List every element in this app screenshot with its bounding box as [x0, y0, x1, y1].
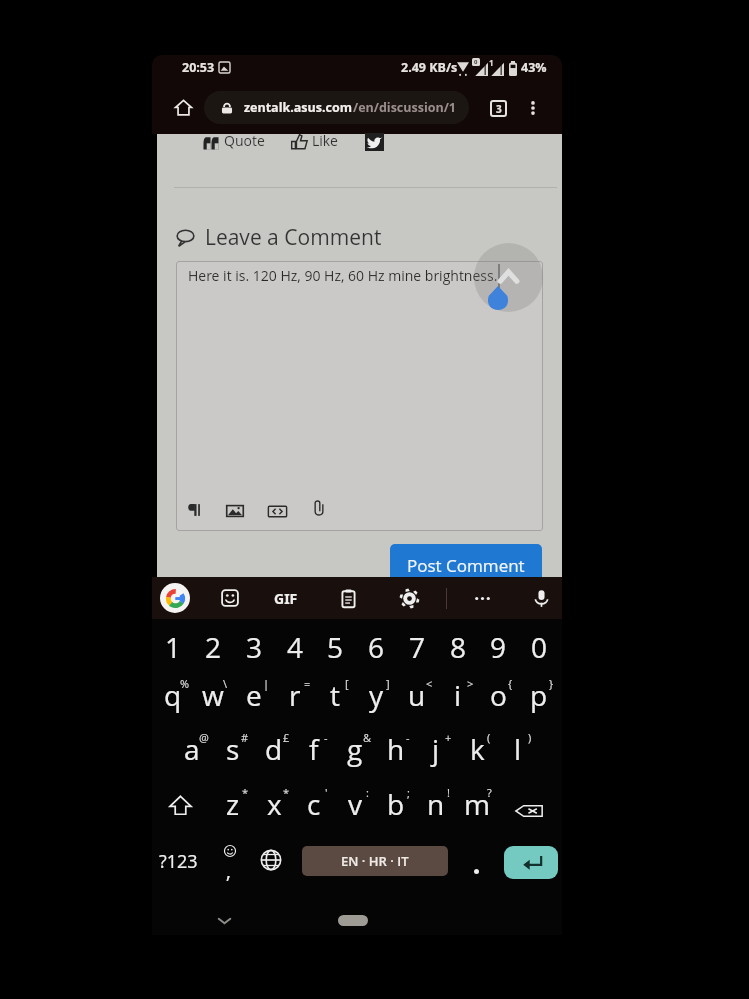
button[interactable]: p [519, 669, 559, 721]
staticText: 4 [287, 628, 304, 666]
button[interactable]: 8 [438, 621, 478, 673]
button[interactable]: e [234, 669, 274, 721]
button[interactable]: Stickers [215, 583, 245, 613]
staticText: 3 [246, 628, 263, 666]
button[interactable]: g [335, 723, 375, 775]
button[interactable]: 1 [153, 621, 193, 673]
staticText: ' [325, 785, 328, 800]
button[interactable]: w [193, 669, 233, 721]
button[interactable]: Post Comment [390, 544, 542, 577]
staticText: zentalk.asus.com [244, 99, 353, 116]
staticText: Leave a Comment [205, 223, 382, 252]
button[interactable]: 5 [315, 621, 355, 673]
staticText: 2.49 KB/s [401, 59, 458, 76]
button[interactable]: v [335, 778, 375, 830]
button[interactable]: Like [312, 131, 338, 150]
staticText: q [164, 676, 182, 714]
staticText: Quote [224, 131, 265, 150]
button[interactable]: zentalk.asus.com [204, 91, 469, 124]
button[interactable]: Home [168, 92, 198, 122]
staticText: @ [199, 730, 209, 745]
button[interactable]: a [172, 723, 212, 775]
button[interactable]: 7 [397, 621, 437, 673]
staticText: e [246, 676, 262, 714]
button[interactable]: Voice input [526, 583, 556, 613]
button[interactable]: 2 [193, 621, 233, 673]
staticText: 8 [450, 628, 467, 666]
button[interactable]: x [254, 778, 294, 830]
button[interactable]: k [457, 723, 497, 775]
button[interactable]: Backspace [509, 791, 549, 831]
button[interactable]: Settings [394, 583, 424, 613]
staticText: ?123 [159, 849, 198, 874]
button[interactable]: d [254, 723, 294, 775]
staticText: m [464, 785, 491, 823]
button[interactable]: Tabs [483, 93, 513, 123]
button[interactable]: o [478, 669, 518, 721]
button[interactable]: Clipboard [333, 583, 363, 613]
staticText: b [387, 785, 405, 823]
staticText: w [202, 676, 224, 714]
staticText: z [226, 785, 240, 823]
button[interactable]: t [315, 669, 355, 721]
button[interactable]: Google [160, 583, 190, 613]
staticText: a [184, 730, 200, 768]
staticText: & [363, 730, 372, 745]
button[interactable]: Share on Twitter [365, 133, 384, 151]
button[interactable]: 6 [356, 621, 396, 673]
button[interactable]: EN · HR · IT [302, 846, 448, 876]
button[interactable]: l [498, 723, 538, 775]
staticText: , [226, 857, 231, 884]
staticText: p [530, 676, 548, 714]
button[interactable] [462, 845, 490, 879]
staticText: - [406, 730, 410, 745]
staticText: j [432, 730, 440, 768]
button[interactable]: 9 [478, 621, 518, 673]
button[interactable]: GIF [274, 589, 298, 608]
staticText: h [387, 730, 405, 768]
staticText: Here it is. 120 Hz, 90 Hz, 60 Hz mine br… [188, 266, 498, 285]
button[interactable]: y [356, 669, 396, 721]
button[interactable]: b [376, 778, 416, 830]
staticText: { [508, 676, 513, 691]
button[interactable]: Change language [256, 845, 286, 875]
button[interactable]: c [294, 778, 334, 830]
staticText: k [470, 730, 485, 768]
button[interactable]: Shift [160, 785, 200, 825]
button[interactable]: r [275, 669, 315, 721]
staticText: % [180, 676, 190, 691]
button[interactable]: h [376, 723, 416, 775]
button[interactable]: Quote [224, 131, 265, 150]
staticText: x [267, 785, 282, 823]
button[interactable]: ?123 [152, 841, 204, 881]
button[interactable]: f [294, 723, 334, 775]
button[interactable]: n [416, 778, 456, 830]
button[interactable]: 4 [275, 621, 315, 673]
staticText: : [366, 785, 369, 800]
staticText: EN · HR · IT [341, 852, 409, 870]
button[interactable]: More [467, 583, 497, 613]
button[interactable]: m [457, 778, 497, 830]
staticText: 0 [474, 58, 478, 66]
staticText: 0 [531, 628, 548, 666]
button[interactable]: , [214, 843, 246, 879]
button[interactable]: 3 [234, 621, 274, 673]
button[interactable]: 0 [519, 621, 559, 673]
button[interactable]: u [397, 669, 437, 721]
staticText: 7 [409, 628, 426, 666]
staticText: Post Comment [407, 554, 525, 577]
staticText: u [408, 676, 426, 714]
button[interactable] [176, 261, 543, 531]
staticText: 9 [490, 628, 507, 666]
staticText: f [309, 730, 319, 768]
staticText: r [289, 676, 301, 714]
button[interactable]: More options [518, 93, 548, 123]
button[interactable]: z [213, 778, 253, 830]
staticText: } [549, 676, 554, 691]
button[interactable]: j [416, 723, 456, 775]
button[interactable]: Enter [504, 846, 558, 879]
button[interactable]: q [153, 669, 193, 721]
button[interactable]: i [438, 669, 478, 721]
staticText: /en/discussion/1 [353, 99, 457, 116]
button[interactable]: s [213, 723, 253, 775]
